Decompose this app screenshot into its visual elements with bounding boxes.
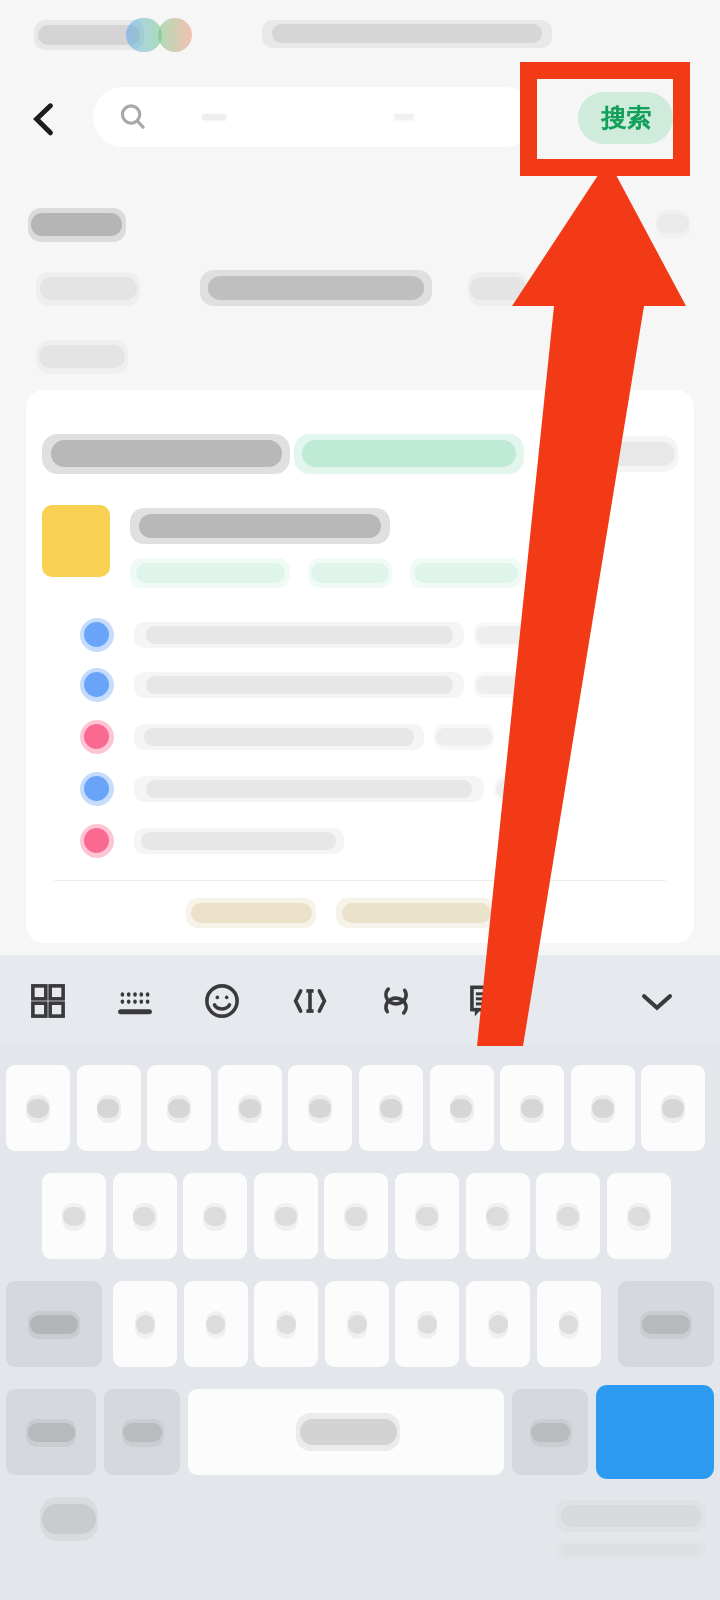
button[interactable] xyxy=(466,1281,530,1367)
button[interactable] xyxy=(325,1281,389,1367)
button[interactable]: Attachment xyxy=(364,969,428,1033)
button[interactable] xyxy=(184,1281,248,1367)
button[interactable]: Grid xyxy=(16,969,80,1033)
button[interactable]: Message xyxy=(450,969,514,1033)
button[interactable]: Hide keyboard xyxy=(625,969,689,1033)
button[interactable] xyxy=(288,1065,352,1151)
button[interactable]: Text cursor xyxy=(278,969,342,1033)
button[interactable] xyxy=(359,1065,423,1151)
button[interactable] xyxy=(571,1065,635,1151)
button[interactable] xyxy=(113,1173,177,1259)
button[interactable] xyxy=(395,1173,459,1259)
button[interactable] xyxy=(77,1065,141,1151)
button[interactable] xyxy=(641,1065,705,1151)
button[interactable] xyxy=(218,1065,282,1151)
button[interactable] xyxy=(395,1281,459,1367)
button[interactable] xyxy=(500,1065,564,1151)
button[interactable] xyxy=(188,1389,504,1475)
button[interactable] xyxy=(324,1173,388,1259)
button[interactable] xyxy=(93,87,535,147)
staticText: 搜索 xyxy=(601,103,651,134)
button[interactable] xyxy=(536,1173,600,1259)
button[interactable] xyxy=(596,1385,714,1479)
button[interactable]: Keyboard xyxy=(103,969,167,1033)
button[interactable] xyxy=(42,1173,106,1259)
button[interactable] xyxy=(512,1389,588,1475)
button[interactable] xyxy=(147,1065,211,1151)
button[interactable] xyxy=(466,1173,530,1259)
button[interactable] xyxy=(254,1173,318,1259)
button[interactable]: 搜索 xyxy=(578,92,673,144)
button[interactable] xyxy=(6,1281,102,1367)
button[interactable] xyxy=(618,1281,714,1367)
button[interactable] xyxy=(183,1173,247,1259)
button[interactable] xyxy=(254,1281,318,1367)
button[interactable]: Back xyxy=(14,88,76,150)
button[interactable] xyxy=(113,1281,177,1367)
button[interactable] xyxy=(6,1065,70,1151)
button[interactable]: Emoji xyxy=(190,969,254,1033)
button[interactable] xyxy=(6,1389,96,1475)
button[interactable] xyxy=(607,1173,671,1259)
button[interactable] xyxy=(537,1281,601,1367)
button[interactable] xyxy=(430,1065,494,1151)
button[interactable] xyxy=(104,1389,180,1475)
